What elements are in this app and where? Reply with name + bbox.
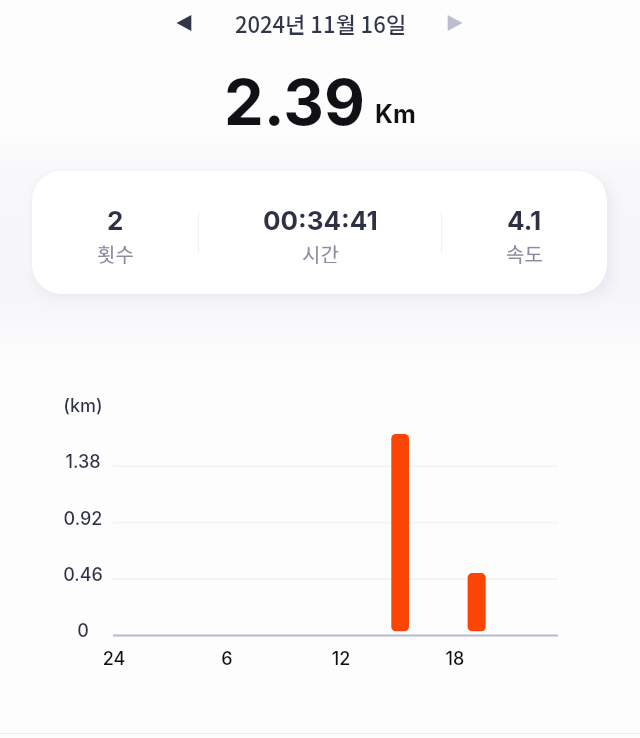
staticText: 횟수 — [97, 239, 134, 268]
button[interactable]: Previous day — [162, 1, 206, 45]
staticText: 6 — [197, 648, 257, 670]
staticText: 시간 — [302, 239, 339, 268]
staticText: Km — [375, 99, 416, 129]
staticText: 00:34:41 — [263, 205, 378, 236]
staticText: (km) — [23, 395, 143, 417]
button[interactable]: 00:34:41 — [199, 171, 441, 294]
staticText: 0 — [23, 620, 143, 642]
staticText: 18 — [425, 648, 485, 670]
staticText: 12 — [311, 648, 371, 670]
staticText: 24 — [84, 648, 144, 670]
button[interactable]: 2 — [32, 171, 198, 294]
staticText: 2 — [107, 205, 124, 236]
staticText: 속도 — [506, 239, 543, 268]
staticText: 1.38 — [23, 451, 143, 473]
staticText: 4.1 — [507, 205, 542, 236]
staticText: 0.46 — [23, 564, 143, 586]
staticText: 2024년 11월 16일 — [235, 7, 406, 39]
button[interactable]: 4.1 — [442, 171, 607, 294]
staticText: 0.92 — [23, 508, 143, 530]
button[interactable]: Daily distance bar chart — [0, 0, 640, 738]
staticText: 2.39 — [224, 64, 365, 140]
button[interactable]: Next day — [432, 1, 476, 45]
